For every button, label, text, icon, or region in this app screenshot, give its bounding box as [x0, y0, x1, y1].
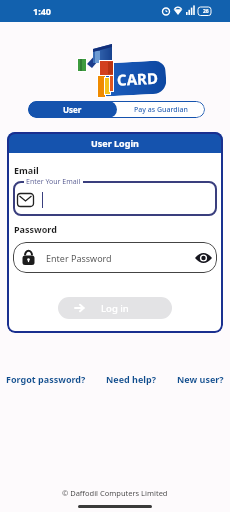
staticText: Password: [14, 223, 57, 235]
staticText: Email: [14, 164, 39, 176]
staticText: 26: [203, 8, 209, 15]
button[interactable]: Need help?: [106, 373, 156, 385]
button[interactable]: [13, 181, 217, 216]
staticText: User Login: [91, 137, 139, 149]
staticText: © Daffodil Computers Limited: [62, 488, 168, 498]
staticText: Log in: [101, 302, 129, 315]
button[interactable]: New user?: [177, 373, 224, 385]
staticText: Pay as Guardian: [134, 105, 188, 115]
button[interactable]: Pay as Guardian: [117, 101, 205, 118]
button[interactable]: Forgot password?: [6, 373, 86, 385]
button[interactable]: Enter Password: [13, 242, 217, 273]
staticText: Enter Your Email: [26, 177, 81, 187]
button[interactable]: Log in: [58, 297, 172, 319]
staticText: User: [63, 104, 82, 115]
button[interactable]: User: [28, 101, 117, 118]
staticText: 1:40: [33, 5, 51, 17]
staticText: Enter Password: [46, 252, 112, 264]
staticText: CARD: [116, 68, 158, 90]
